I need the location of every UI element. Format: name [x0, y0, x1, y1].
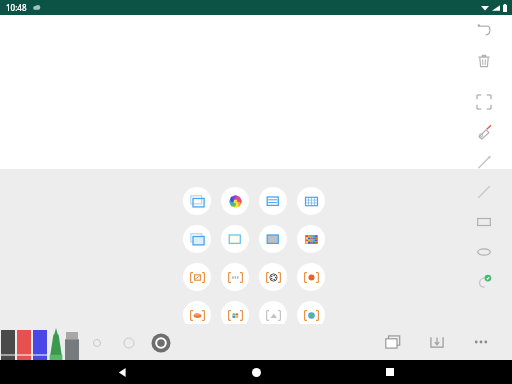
button[interactable]: Lasso: [473, 271, 495, 293]
button[interactable]: Undo: [473, 19, 495, 41]
button[interactable]: Stroke size: [152, 334, 170, 352]
button[interactable]: Sticker 1: [183, 187, 211, 215]
button[interactable]: Ellipse: [473, 241, 495, 263]
button[interactable]: Pen: [16, 330, 32, 360]
button[interactable]: Fullscreen: [473, 91, 495, 113]
button[interactable]: Highlighter: [48, 328, 64, 360]
button[interactable]: Pencil: [473, 151, 495, 173]
button[interactable]: Stroke size: [120, 334, 138, 352]
button[interactable]: Line: [473, 181, 495, 203]
button[interactable]: Eraser: [64, 332, 80, 360]
button[interactable]: Sticker 12: [297, 263, 325, 291]
button[interactable]: Sticker 3: [259, 187, 287, 215]
button[interactable]: Sticker 16: [297, 301, 325, 329]
button[interactable]: Sticker 14: [221, 301, 249, 329]
button[interactable]: Delete: [473, 50, 495, 72]
button[interactable]: Home: [244, 360, 268, 384]
button[interactable]: Import: [426, 331, 448, 353]
button[interactable]: Sticker 8: [297, 225, 325, 253]
staticText: 10:48: [6, 2, 27, 13]
button[interactable]: Sticker 9: [183, 263, 211, 291]
button[interactable]: Stroke size: [88, 334, 106, 352]
button[interactable]: Pen: [473, 121, 495, 143]
button[interactable]: Sticker 5: [183, 225, 211, 253]
button[interactable]: Back: [110, 360, 134, 384]
button[interactable]: Sticker 15: [259, 301, 287, 329]
button[interactable]: Sticker 4: [297, 187, 325, 215]
button[interactable]: Rectangle: [473, 211, 495, 233]
button[interactable]: Pen: [0, 330, 16, 360]
button[interactable]: Pages: [382, 331, 404, 353]
button[interactable]: Sticker 6: [221, 225, 249, 253]
button[interactable]: Sticker 10: [221, 263, 249, 291]
button[interactable]: Sticker 2: [221, 187, 249, 215]
button[interactable]: Sticker 13: [183, 301, 211, 329]
button[interactable]: Sticker 7: [259, 225, 287, 253]
button[interactable]: Recents: [378, 360, 402, 384]
button[interactable]: Sticker 11: [259, 263, 287, 291]
button[interactable]: More options: [470, 331, 492, 353]
button[interactable]: Pen: [32, 330, 48, 360]
